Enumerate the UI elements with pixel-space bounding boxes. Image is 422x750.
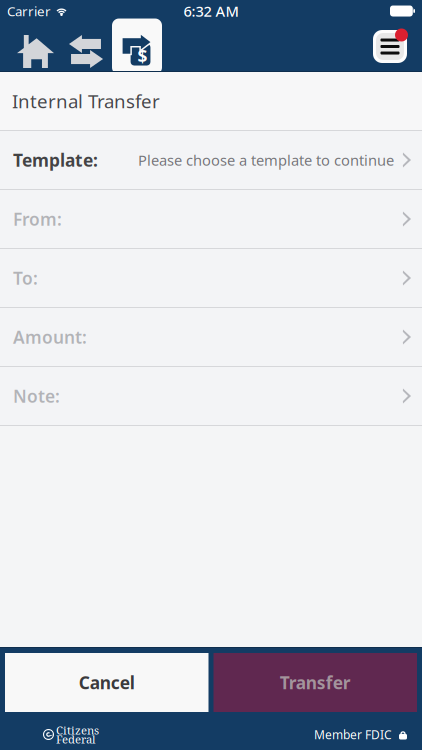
staticText: From: <box>13 207 62 230</box>
button[interactable]: Note: <box>0 367 422 426</box>
button[interactable]: Transfers <box>69 35 112 71</box>
button[interactable]: Amount: <box>0 308 422 367</box>
button[interactable]: Home <box>0 35 69 71</box>
staticText: Federal <box>56 731 96 747</box>
button[interactable]: Cancel <box>5 653 208 712</box>
button[interactable]: To: <box>0 249 422 308</box>
staticText: To: <box>13 266 38 289</box>
staticText: Member FDIC <box>314 726 392 742</box>
staticText: Please choose a template to continue <box>138 150 394 170</box>
button[interactable]: Transfer <box>213 653 417 712</box>
button[interactable]: Template: <box>0 131 422 190</box>
staticText: Cancel <box>79 671 135 694</box>
staticText: Amount: <box>13 325 87 348</box>
staticText: Template: <box>13 148 98 171</box>
button[interactable]: Internal Transfer <box>112 22 162 71</box>
button[interactable]: From: <box>0 190 422 249</box>
staticText: Transfer <box>280 671 351 694</box>
staticText: Note: <box>13 384 60 407</box>
staticText: Citizens <box>56 722 99 738</box>
staticText: 6:32 AM <box>183 1 238 21</box>
staticText: Internal Transfer <box>12 89 160 113</box>
staticText: Carrier <box>7 2 51 20</box>
staticText: $ <box>137 44 147 67</box>
button[interactable]: Menu <box>370 22 422 71</box>
